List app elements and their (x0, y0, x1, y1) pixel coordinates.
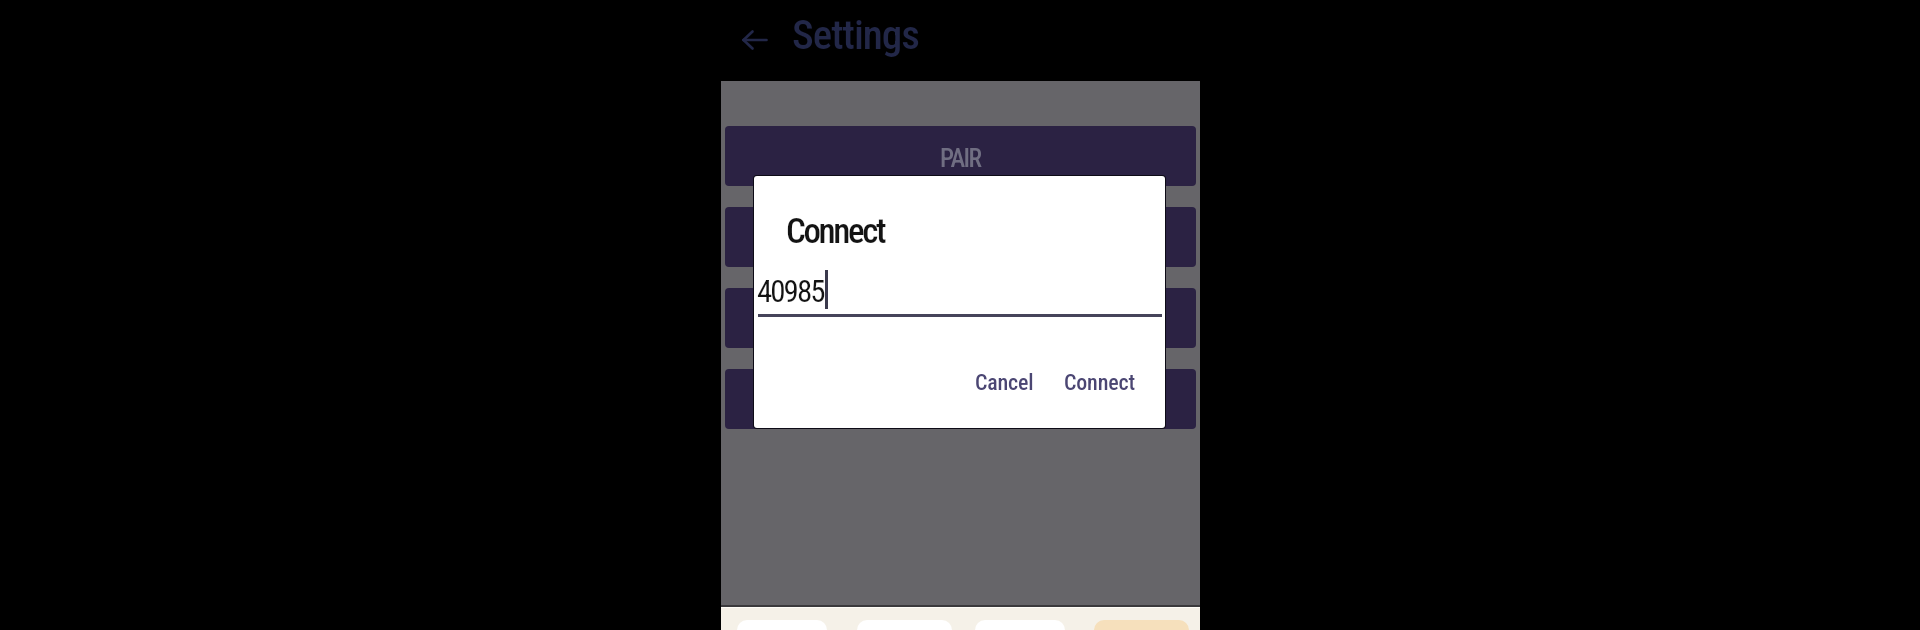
button[interactable]: Suggestion (1094, 620, 1189, 630)
button[interactable]: PAIR (725, 126, 1196, 186)
button[interactable]: Back (735, 20, 775, 60)
staticText: Connect (1064, 370, 1135, 396)
button[interactable] (725, 288, 1196, 348)
button[interactable]: Suggestion (857, 620, 952, 630)
button[interactable]: Suggestion (737, 620, 827, 630)
button[interactable]: Cancel (965, 365, 1044, 401)
button[interactable] (725, 207, 1196, 267)
button[interactable] (725, 369, 1196, 429)
button[interactable]: Connect (1054, 365, 1145, 401)
staticText: PAIR (940, 144, 981, 173)
staticText: Connect (786, 211, 885, 252)
staticText: 40985 (757, 273, 824, 309)
staticText: Cancel (975, 370, 1034, 396)
button[interactable]: Suggestion (975, 620, 1065, 630)
staticText: Settings (792, 11, 919, 59)
